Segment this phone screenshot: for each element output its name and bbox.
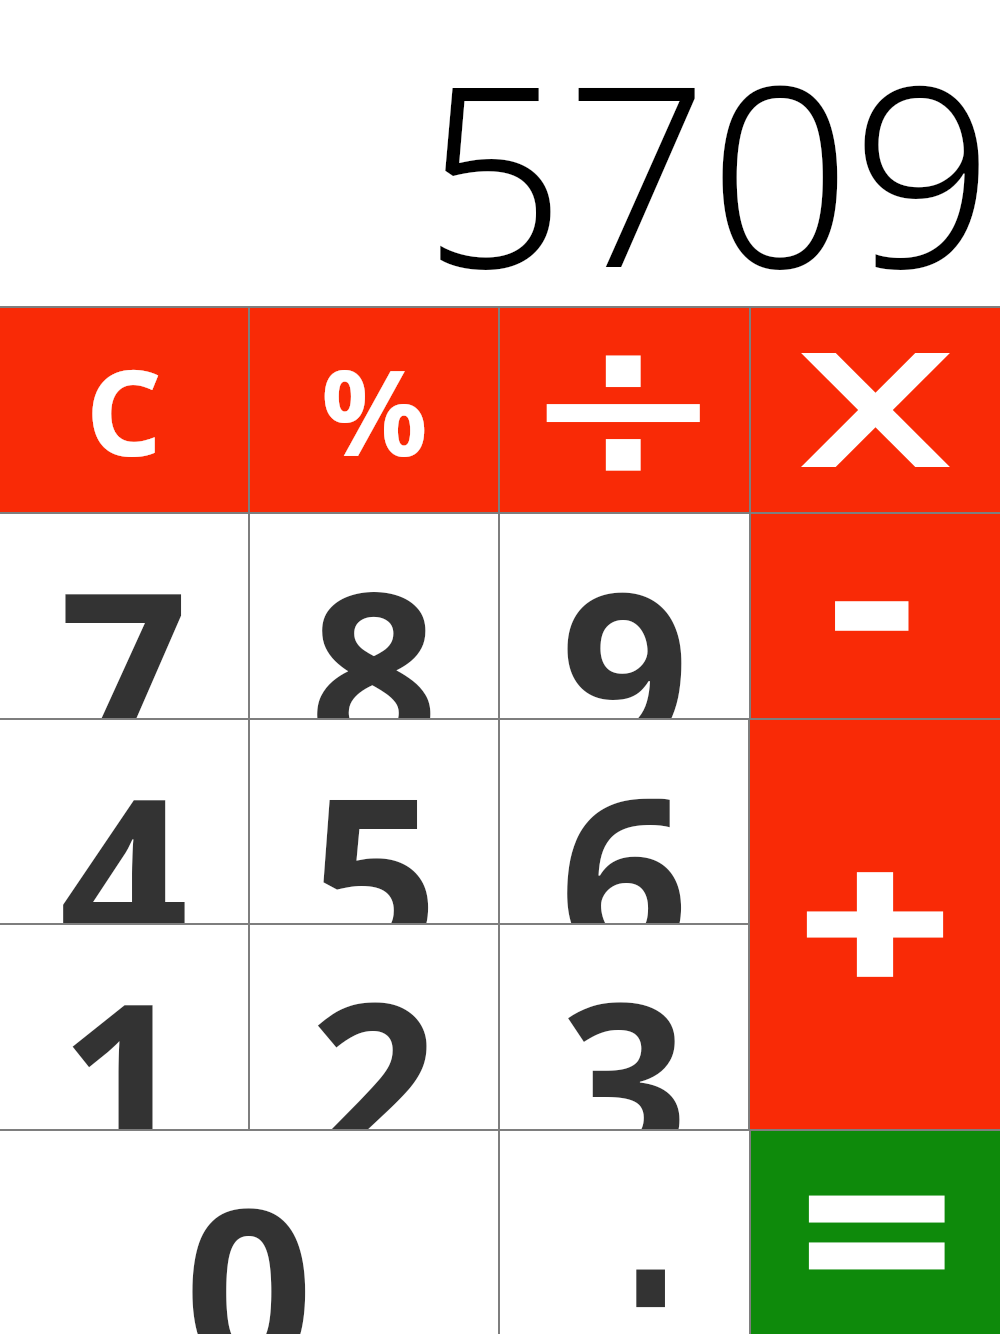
staticText: 2: [309, 925, 439, 1129]
button[interactable]: Percent: [250, 308, 498, 512]
staticText: 6: [559, 720, 689, 923]
button[interactable]: 5: [250, 720, 498, 923]
staticText: 8: [309, 514, 439, 718]
button[interactable]: 4: [0, 720, 248, 923]
button[interactable]: 6: [500, 720, 748, 923]
button[interactable]: Divide: [500, 308, 749, 512]
button[interactable]: 9: [500, 514, 749, 718]
button[interactable]: Minus: [751, 514, 1000, 718]
button[interactable]: 2: [250, 925, 498, 1129]
staticText: 9: [560, 514, 690, 718]
staticText: C: [86, 330, 162, 491]
button[interactable]: 0: [0, 1131, 498, 1334]
button[interactable]: Equals: [751, 1131, 1000, 1334]
staticText: 0: [184, 1131, 314, 1334]
staticText: 5: [309, 720, 439, 923]
staticText: 7: [59, 514, 189, 718]
staticText: 4: [59, 720, 189, 923]
button[interactable]: 7: [0, 514, 248, 718]
staticText: 3: [559, 925, 689, 1129]
button[interactable]: Clear: [0, 308, 248, 512]
button[interactable]: 3: [500, 925, 748, 1129]
button[interactable]: Multiply: [751, 308, 1000, 512]
staticText: 1: [59, 925, 189, 1129]
button[interactable]: Plus: [750, 720, 1000, 1129]
button[interactable]: 8: [250, 514, 498, 718]
button[interactable]: 1: [0, 925, 248, 1129]
staticText: %: [321, 330, 428, 491]
button[interactable]: Decimal point: [500, 1131, 749, 1334]
staticText: 5709: [423, 0, 994, 288]
